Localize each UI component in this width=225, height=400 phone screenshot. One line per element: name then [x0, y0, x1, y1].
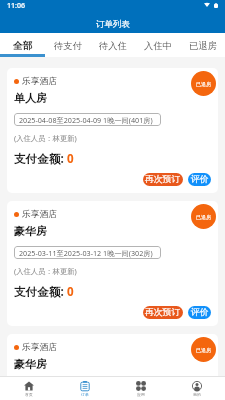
button[interactable]: 首页 — [0, 377, 57, 400]
button[interactable]: 评价 — [188, 306, 211, 319]
staticText: (入住人员：林更新) — [14, 266, 77, 276]
button[interactable]: 已退房 — [180, 33, 225, 57]
button[interactable]: 已退房 — [191, 337, 216, 362]
button[interactable]: 已退房 — [191, 71, 216, 96]
staticText: 支付金额: — [14, 284, 67, 300]
staticText: 已退房 — [189, 40, 217, 52]
staticText: 再次预订 — [145, 307, 181, 318]
staticText: 乐享酒店 — [22, 209, 58, 220]
staticText: 我的 — [193, 392, 201, 397]
staticText: 入住中 — [144, 40, 172, 52]
staticText: 11:06 — [7, 1, 25, 11]
staticText: 豪华房 — [14, 357, 47, 371]
staticText: 乐享酒店 — [22, 76, 58, 87]
button[interactable]: 评价 — [188, 173, 211, 186]
staticText: 已退房 — [196, 81, 211, 87]
staticText: 待入住 — [99, 40, 127, 52]
button[interactable]: 全部 — [0, 33, 45, 57]
staticText: 乐享酒店 — [22, 342, 58, 353]
staticText: 2025-02-10至2025-02-11 1晚一间(203房) — [19, 381, 153, 391]
button[interactable]: 再次预订 — [143, 173, 183, 186]
button[interactable]: 乐享酒店 — [7, 334, 218, 400]
button[interactable]: 再次预订 — [143, 306, 183, 319]
staticText: 评价 — [191, 174, 209, 185]
button[interactable]: 待入住 — [90, 33, 135, 57]
staticText: 已退房 — [196, 214, 211, 220]
staticText: 再次预订 — [145, 381, 181, 392]
staticText: 订单 — [81, 392, 89, 397]
button[interactable]: 应用 — [113, 377, 169, 400]
staticText: 应用 — [137, 392, 145, 397]
staticText: 0 — [67, 151, 74, 167]
staticText: 豪华房 — [14, 224, 47, 238]
staticText: 评价 — [191, 381, 209, 392]
staticText: 首页 — [25, 392, 33, 397]
staticText: 订单列表 — [96, 19, 130, 30]
button[interactable]: 入住中 — [135, 33, 180, 57]
staticText: 2025-04-08至2025-04-09 1晚一间(401房) — [19, 115, 153, 125]
staticText: 再次预订 — [145, 174, 181, 185]
staticText: 支付金额: — [14, 151, 67, 167]
staticText: 2025-03-11至2025-03-12 1晚一间(302房) — [19, 248, 153, 258]
button[interactable]: 待支付 — [45, 33, 90, 57]
staticText: 待支付 — [54, 40, 82, 52]
staticText: (入住人员：林更新) — [14, 133, 77, 143]
staticText: 评价 — [191, 307, 209, 318]
button[interactable]: 评价 — [188, 380, 211, 393]
staticText: 单人房 — [14, 91, 47, 105]
button[interactable]: 已退房 — [191, 204, 216, 229]
staticText: 已退房 — [196, 347, 211, 353]
button[interactable]: 乐享酒店 — [7, 68, 218, 193]
button[interactable]: 再次预订 — [143, 380, 183, 393]
staticText: 全部 — [13, 40, 33, 52]
button[interactable]: 我的 — [169, 377, 225, 400]
button[interactable]: 乐享酒店 — [7, 201, 218, 326]
button[interactable]: 订单 — [57, 377, 113, 400]
staticText: 0 — [67, 284, 74, 300]
